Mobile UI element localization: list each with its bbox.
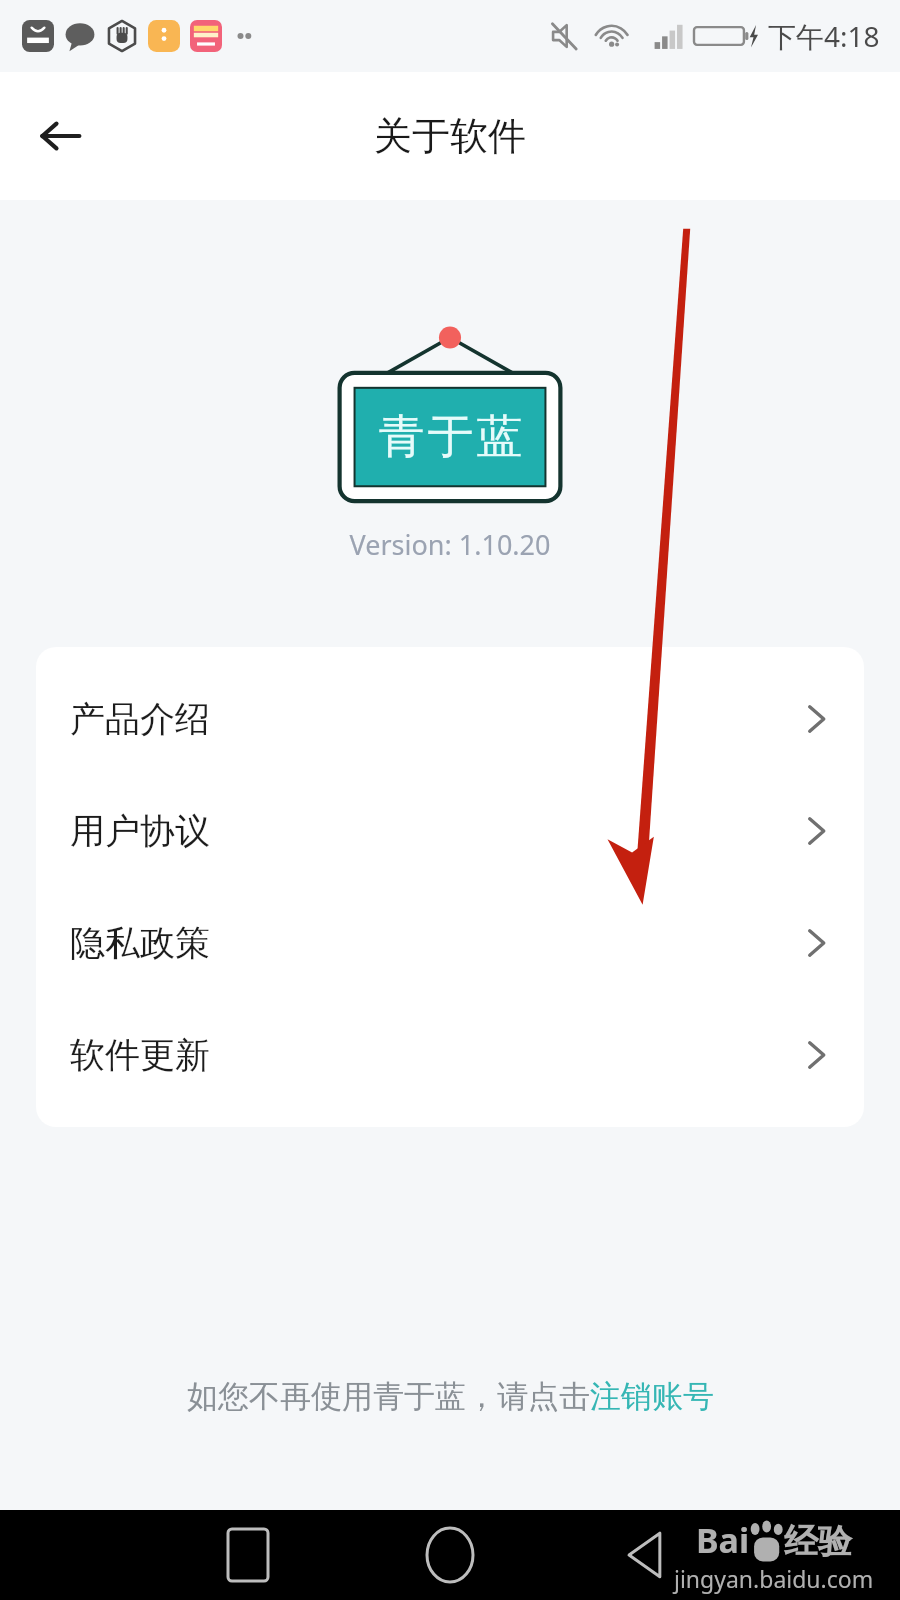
button[interactable]: Back <box>24 100 96 172</box>
button[interactable]: 软件更新 <box>36 999 864 1111</box>
button[interactable]: 如您不再使用青于蓝，请点击注销账号 <box>179 1369 722 1424</box>
staticText: 产品介绍 <box>70 697 210 741</box>
button[interactable]: 产品介绍 <box>36 663 864 775</box>
button[interactable]: 用户协议 <box>36 775 864 887</box>
staticText: 如您不再使用青于蓝，请点击注销账号 <box>187 1377 714 1416</box>
staticText: Bai <box>696 1517 750 1563</box>
staticText: 经验 <box>784 1520 852 1563</box>
staticText: Version: 1.10.20 <box>0 526 900 563</box>
staticText: 下午4:18 <box>768 17 880 55</box>
button[interactable]: Back <box>608 1519 680 1591</box>
button[interactable]: 隐私政策 <box>36 887 864 999</box>
staticText: 隐私政策 <box>70 921 210 965</box>
button[interactable]: Home <box>414 1519 486 1591</box>
button[interactable]: Recent apps <box>212 1519 284 1591</box>
staticText: jingyan.baidu.com <box>674 1563 874 1594</box>
staticText: 青于蓝 <box>377 408 524 466</box>
staticText: 软件更新 <box>70 1033 210 1077</box>
staticText: 用户协议 <box>70 809 210 853</box>
staticText: 关于软件 <box>374 112 526 160</box>
